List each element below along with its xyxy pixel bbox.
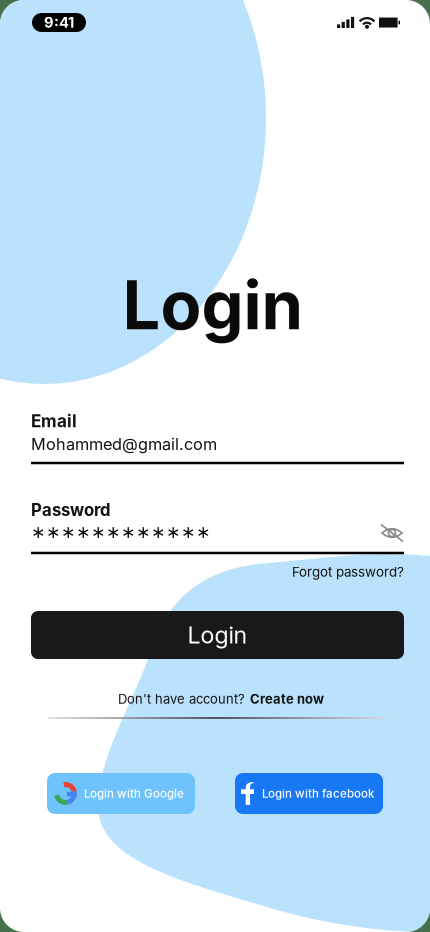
button[interactable]: Login with Google [47,773,195,814]
staticText: Create now [250,691,324,707]
staticText: ∗∗∗∗∗∗∗∗∗∗∗∗ [31,522,211,542]
button[interactable]: Login with facebook [235,773,383,814]
button[interactable]: Login [31,611,404,659]
button[interactable]: Show password [375,518,409,548]
staticText: Login with Google [84,787,184,800]
staticText: Login with facebook [262,787,374,800]
staticText: Login [122,265,303,345]
button[interactable]: Forgot password? [292,561,404,583]
staticText: Mohammed@gmail.com [31,434,217,454]
staticText: Don't have account? [118,691,245,707]
staticText: Forgot password? [292,564,404,580]
button[interactable]: Don't have account? [118,688,324,710]
staticText: 9:41 [44,14,74,31]
staticText: Password [31,500,111,520]
staticText: Login [187,621,247,649]
staticText: Email [31,411,77,431]
